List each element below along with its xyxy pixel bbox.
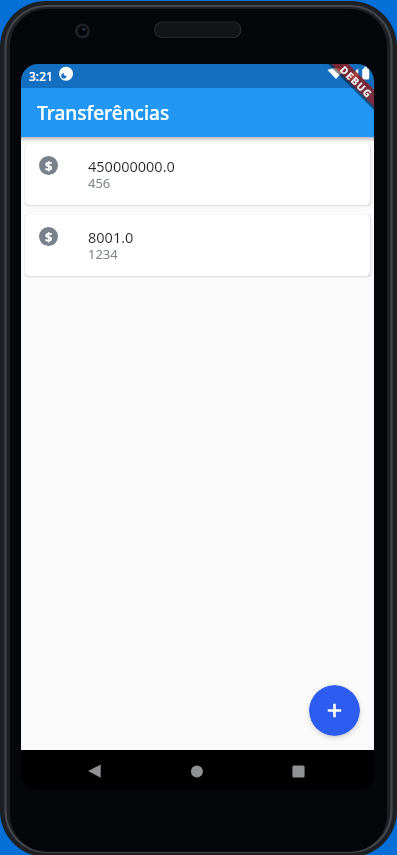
button[interactable] bbox=[173, 751, 221, 789]
button[interactable] bbox=[274, 751, 322, 789]
button[interactable] bbox=[309, 685, 360, 736]
staticText: 3:21 bbox=[29, 68, 53, 84]
staticText: 8001.0 bbox=[88, 227, 134, 247]
staticText: DEBUG bbox=[339, 64, 374, 100]
staticText: $ bbox=[45, 157, 53, 175]
button[interactable]: $ bbox=[25, 215, 370, 276]
staticText: 456 bbox=[88, 174, 111, 192]
staticText: 450000000.0 bbox=[88, 156, 175, 176]
staticText: 1234 bbox=[88, 245, 118, 263]
staticText: $ bbox=[45, 228, 53, 246]
button[interactable] bbox=[74, 751, 122, 789]
button[interactable]: $ bbox=[25, 144, 370, 205]
staticText: Transferências bbox=[37, 100, 170, 126]
